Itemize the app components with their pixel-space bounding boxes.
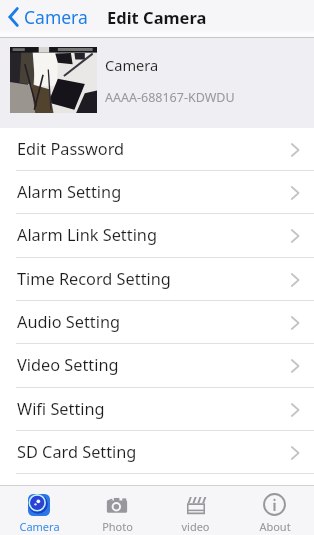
staticText: About <box>259 519 291 534</box>
button[interactable]: video <box>156 486 235 535</box>
staticText: video <box>181 519 210 534</box>
staticText: Alarm Setting <box>17 181 122 203</box>
button[interactable]: SD Card Setting <box>0 431 314 474</box>
staticText: AAAA-688167-KDWDU <box>105 89 235 106</box>
staticText: Alarm Link Setting <box>17 224 157 246</box>
button[interactable]: Photo <box>78 486 156 535</box>
staticText: Edit Camera <box>107 6 207 28</box>
button[interactable]: Camera <box>0 486 78 535</box>
staticText: Video Setting <box>17 354 119 376</box>
button[interactable]: Time Record Setting <box>0 258 314 301</box>
staticText: Wifi Setting <box>17 398 105 420</box>
staticText: Edit Password <box>17 138 125 160</box>
button[interactable]: Camera <box>0 0 94 34</box>
staticText: Camera <box>24 5 88 29</box>
button[interactable]: Edit Password <box>0 128 314 171</box>
staticText: Camera <box>19 519 60 534</box>
staticText: Photo <box>102 519 133 534</box>
staticText: Audio Setting <box>17 311 121 333</box>
button[interactable]: About <box>235 486 314 535</box>
button[interactable]: Alarm Setting <box>0 171 314 214</box>
button[interactable]: Wifi Setting <box>0 388 314 431</box>
button[interactable]: Camera <box>0 38 314 128</box>
staticText: Time Record Setting <box>17 268 171 290</box>
button[interactable]: Video Setting <box>0 344 314 388</box>
button[interactable]: Alarm Link Setting <box>0 214 314 258</box>
staticText: Camera <box>105 55 159 75</box>
button[interactable]: Audio Setting <box>0 301 314 344</box>
staticText: SD Card Setting <box>17 441 137 463</box>
